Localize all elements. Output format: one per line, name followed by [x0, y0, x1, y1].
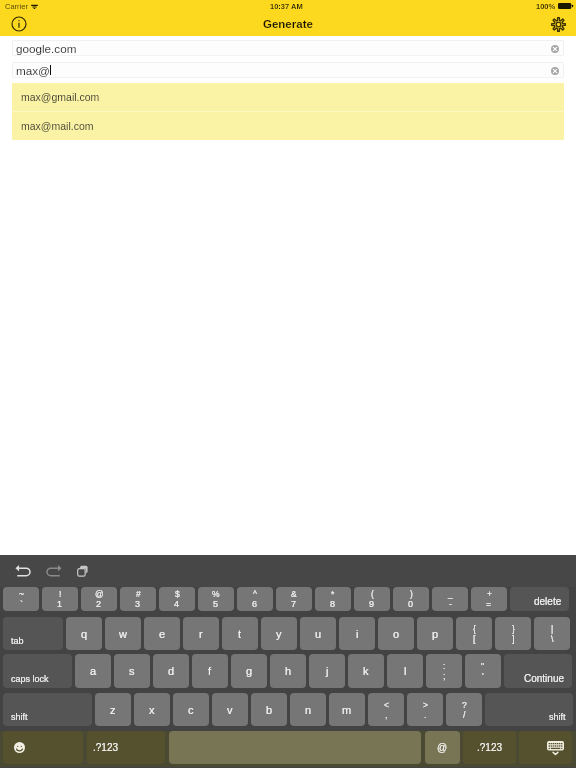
button[interactable]: Info: [6, 12, 32, 36]
button[interactable]: &: [276, 587, 312, 611]
button[interactable]: v: [212, 693, 248, 726]
button[interactable]: !: [42, 587, 78, 611]
button[interactable]: <: [368, 693, 404, 726]
button[interactable]: Hide keyboard: [519, 731, 572, 764]
staticText: =: [486, 599, 492, 609]
button[interactable]: shift: [485, 693, 573, 726]
button[interactable]: s: [114, 654, 150, 688]
staticText: 2: [96, 599, 102, 609]
button[interactable]: y: [261, 617, 297, 650]
staticText: Carrier: [5, 2, 28, 10]
staticText: x: [149, 704, 155, 716]
button[interactable]: x: [134, 693, 170, 726]
button[interactable]: >: [407, 693, 443, 726]
button[interactable]: l: [387, 654, 423, 688]
button[interactable]: Clear text: [549, 65, 560, 76]
button[interactable]: w: [105, 617, 141, 650]
button[interactable]: }: [495, 617, 531, 650]
button[interactable]: delete: [510, 587, 569, 611]
button[interactable]: q: [66, 617, 102, 650]
button[interactable]: Paste: [68, 555, 98, 587]
button[interactable]: ?: [446, 693, 482, 726]
button[interactable]: e: [144, 617, 180, 650]
button[interactable]: ^: [237, 587, 273, 611]
button[interactable]: %: [198, 587, 234, 611]
staticText: !: [59, 589, 62, 598]
button[interactable]: j: [309, 654, 345, 688]
button[interactable]: u: [300, 617, 336, 650]
staticText: s: [129, 665, 135, 677]
staticText: 7: [291, 599, 297, 609]
button[interactable]: z: [95, 693, 131, 726]
staticText: j: [326, 665, 329, 677]
staticText: 6: [252, 599, 258, 609]
staticText: tab: [11, 636, 24, 646]
button[interactable]: ): [393, 587, 429, 611]
button[interactable]: .?123: [87, 731, 165, 764]
staticText: 8: [330, 599, 336, 609]
button[interactable]: r: [183, 617, 219, 650]
button[interactable]: h: [270, 654, 306, 688]
button[interactable]: ": [465, 654, 501, 688]
staticText: 1: [57, 599, 63, 609]
button[interactable]: .?123: [463, 731, 516, 764]
staticText: max@mail.com: [21, 120, 94, 132]
button[interactable]: +: [471, 587, 507, 611]
button[interactable]: Undo: [8, 555, 38, 587]
button[interactable]: Emoji: [3, 731, 83, 764]
button[interactable]: Clear text: [549, 43, 560, 54]
staticText: ": [481, 661, 485, 670]
button[interactable]: :: [426, 654, 462, 688]
button[interactable]: f: [192, 654, 228, 688]
button[interactable]: o: [378, 617, 414, 650]
button[interactable]: max@gmail.com: [12, 83, 564, 111]
button[interactable]: c: [173, 693, 209, 726]
staticText: .?123: [477, 742, 503, 753]
button[interactable]: #: [120, 587, 156, 611]
button[interactable]: @: [425, 731, 460, 764]
button[interactable]: d: [153, 654, 189, 688]
button[interactable]: _: [432, 587, 468, 611]
button[interactable]: {: [456, 617, 492, 650]
button[interactable]: a: [75, 654, 111, 688]
button[interactable]: Continue: [504, 654, 572, 688]
staticText: a: [90, 665, 97, 677]
button[interactable]: Redo: [38, 555, 68, 587]
staticText: *: [331, 589, 335, 598]
button[interactable]: i: [339, 617, 375, 650]
button[interactable]: k: [348, 654, 384, 688]
staticText: ,: [385, 710, 388, 720]
staticText: z: [110, 704, 116, 716]
button[interactable]: n: [290, 693, 326, 726]
button[interactable]: max@: [12, 62, 564, 78]
button[interactable]: @: [81, 587, 117, 611]
button[interactable]: |: [534, 617, 570, 650]
staticText: {: [473, 624, 476, 633]
staticText: ?: [462, 700, 467, 709]
staticText: e: [159, 628, 166, 640]
button[interactable]: ~: [3, 587, 39, 611]
button[interactable]: google.com: [12, 40, 564, 56]
button[interactable]: p: [417, 617, 453, 650]
button[interactable]: caps lock: [3, 654, 72, 688]
staticText: c: [188, 704, 194, 716]
staticText: w: [119, 628, 127, 640]
button[interactable]: Settings: [545, 12, 571, 36]
button[interactable]: $: [159, 587, 195, 611]
staticText: v: [227, 704, 233, 716]
button[interactable]: t: [222, 617, 258, 650]
staticText: k: [363, 665, 369, 677]
button[interactable]: shift: [3, 693, 92, 726]
staticText: google.com: [16, 42, 77, 55]
button[interactable]: max@mail.com: [12, 112, 564, 140]
button[interactable]: (: [354, 587, 390, 611]
button[interactable]: b: [251, 693, 287, 726]
staticText: +: [487, 589, 492, 598]
button[interactable]: g: [231, 654, 267, 688]
staticText: b: [266, 704, 273, 716]
button[interactable]: m: [329, 693, 365, 726]
button[interactable]: tab: [3, 617, 63, 650]
button[interactable]: *: [315, 587, 351, 611]
